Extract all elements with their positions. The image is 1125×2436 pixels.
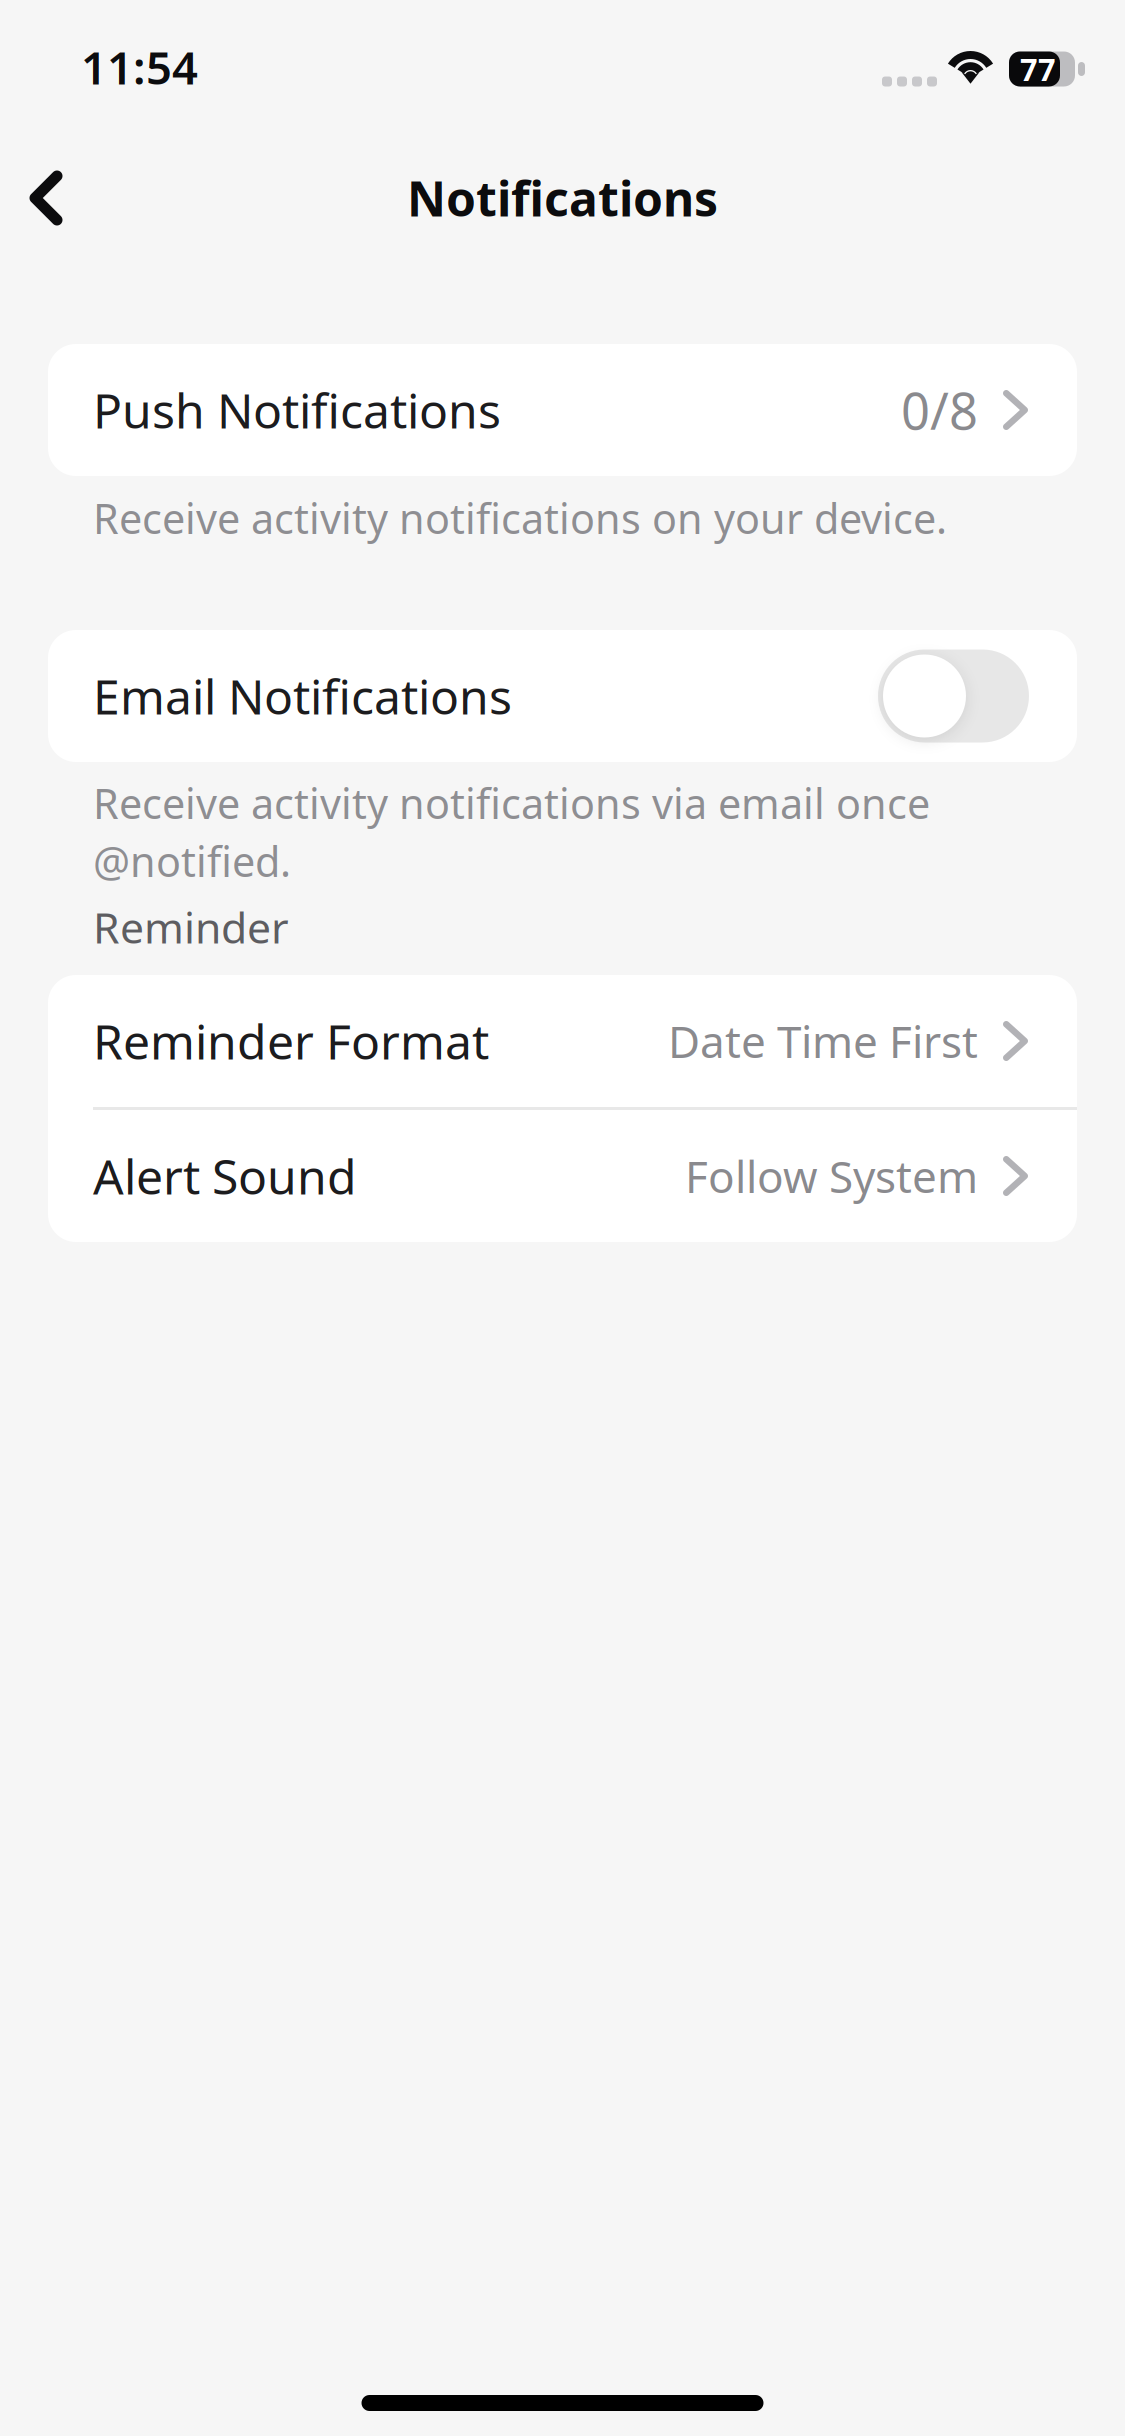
staticText: Reminder Format (93, 1009, 489, 1073)
staticText: Alert Sound (93, 1144, 357, 1208)
button[interactable]: Email Notifications (48, 630, 1077, 762)
staticText: Date Time First (668, 1012, 978, 1070)
staticText: 11:54 (81, 37, 198, 97)
staticText: 77 (1020, 49, 1056, 89)
staticText: Follow System (685, 1147, 978, 1205)
staticText: @notified. (93, 834, 291, 888)
staticText: Receive activity notifications via email… (93, 776, 930, 830)
staticText: Reminder (93, 899, 289, 955)
button[interactable]: Back (0, 150, 92, 246)
staticText: Notifications (407, 166, 718, 230)
button[interactable]: Alert Sound (48, 1110, 1077, 1242)
staticText: 0/8 (901, 376, 978, 444)
button[interactable]: Reminder Format (48, 975, 1077, 1107)
staticText: Email Notifications (93, 664, 512, 728)
button[interactable]: Push Notifications (48, 344, 1077, 476)
staticText: Receive activity notifications on your d… (93, 491, 947, 545)
staticText: Push Notifications (93, 378, 501, 442)
